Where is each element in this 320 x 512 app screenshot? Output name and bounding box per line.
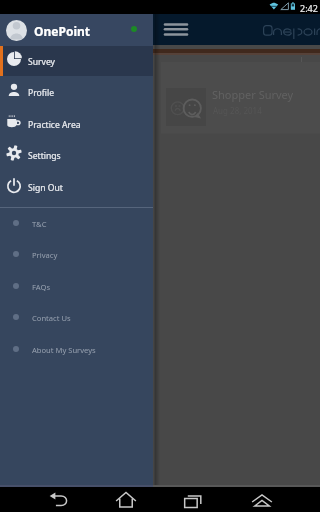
staticText: Profile (28, 87, 55, 99)
staticText: Settings (28, 150, 61, 162)
button[interactable]: Back (45, 487, 71, 512)
staticText: OnePoint (34, 23, 91, 39)
button[interactable]: Privacy (0, 239, 153, 269)
staticText: FAQs (32, 282, 51, 292)
button[interactable]: Sign Out (0, 170, 153, 200)
button[interactable]: Profile (0, 75, 153, 105)
staticText: Sign Out (28, 182, 63, 194)
staticText: Contact Us (32, 313, 71, 323)
button[interactable]: Settings (0, 138, 153, 168)
staticText: T&C (32, 219, 47, 229)
button[interactable]: Practice Area (0, 107, 153, 137)
button[interactable]: Open navigation drawer (162, 15, 190, 43)
button[interactable] (161, 62, 320, 133)
button[interactable]: Home (113, 487, 139, 512)
button[interactable]: Contact Us (0, 302, 153, 332)
staticText: Survey (28, 56, 56, 68)
button[interactable]: About My Surveys (0, 334, 153, 364)
staticText: Privacy (32, 250, 58, 260)
staticText: About My Surveys (32, 345, 96, 355)
button[interactable]: Survey (0, 44, 153, 74)
staticText: Practice Area (28, 119, 81, 131)
button[interactable]: T&C (0, 208, 153, 238)
button[interactable]: Recent apps (180, 487, 206, 512)
other: OnePoint logo (263, 25, 320, 36)
button[interactable]: Menu (249, 487, 275, 512)
staticText: 2:42 (300, 2, 318, 14)
staticText: Shopper Survey (212, 87, 294, 102)
button[interactable]: FAQs (0, 271, 153, 301)
